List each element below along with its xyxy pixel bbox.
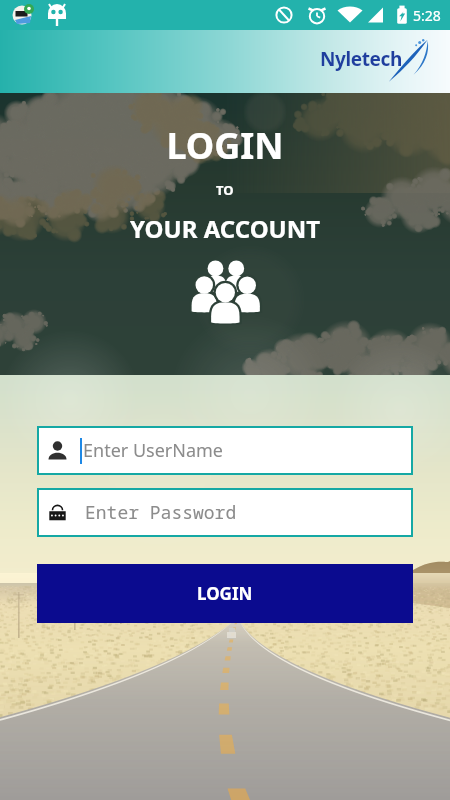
staticText: YOUR ACCOUNT bbox=[130, 212, 321, 245]
button[interactable]: LOGIN bbox=[37, 564, 413, 623]
staticText: Enter Password bbox=[85, 500, 237, 525]
staticText: Enter UserName bbox=[83, 438, 224, 463]
button[interactable]: Enter UserName bbox=[37, 426, 413, 475]
staticText: TO bbox=[216, 181, 234, 199]
button[interactable]: Enter Password bbox=[37, 488, 413, 537]
staticText: LOGIN bbox=[197, 582, 253, 605]
staticText: 5:28 bbox=[413, 6, 441, 25]
staticText: Nyletech bbox=[320, 46, 402, 72]
staticText: LOGIN bbox=[166, 121, 284, 170]
